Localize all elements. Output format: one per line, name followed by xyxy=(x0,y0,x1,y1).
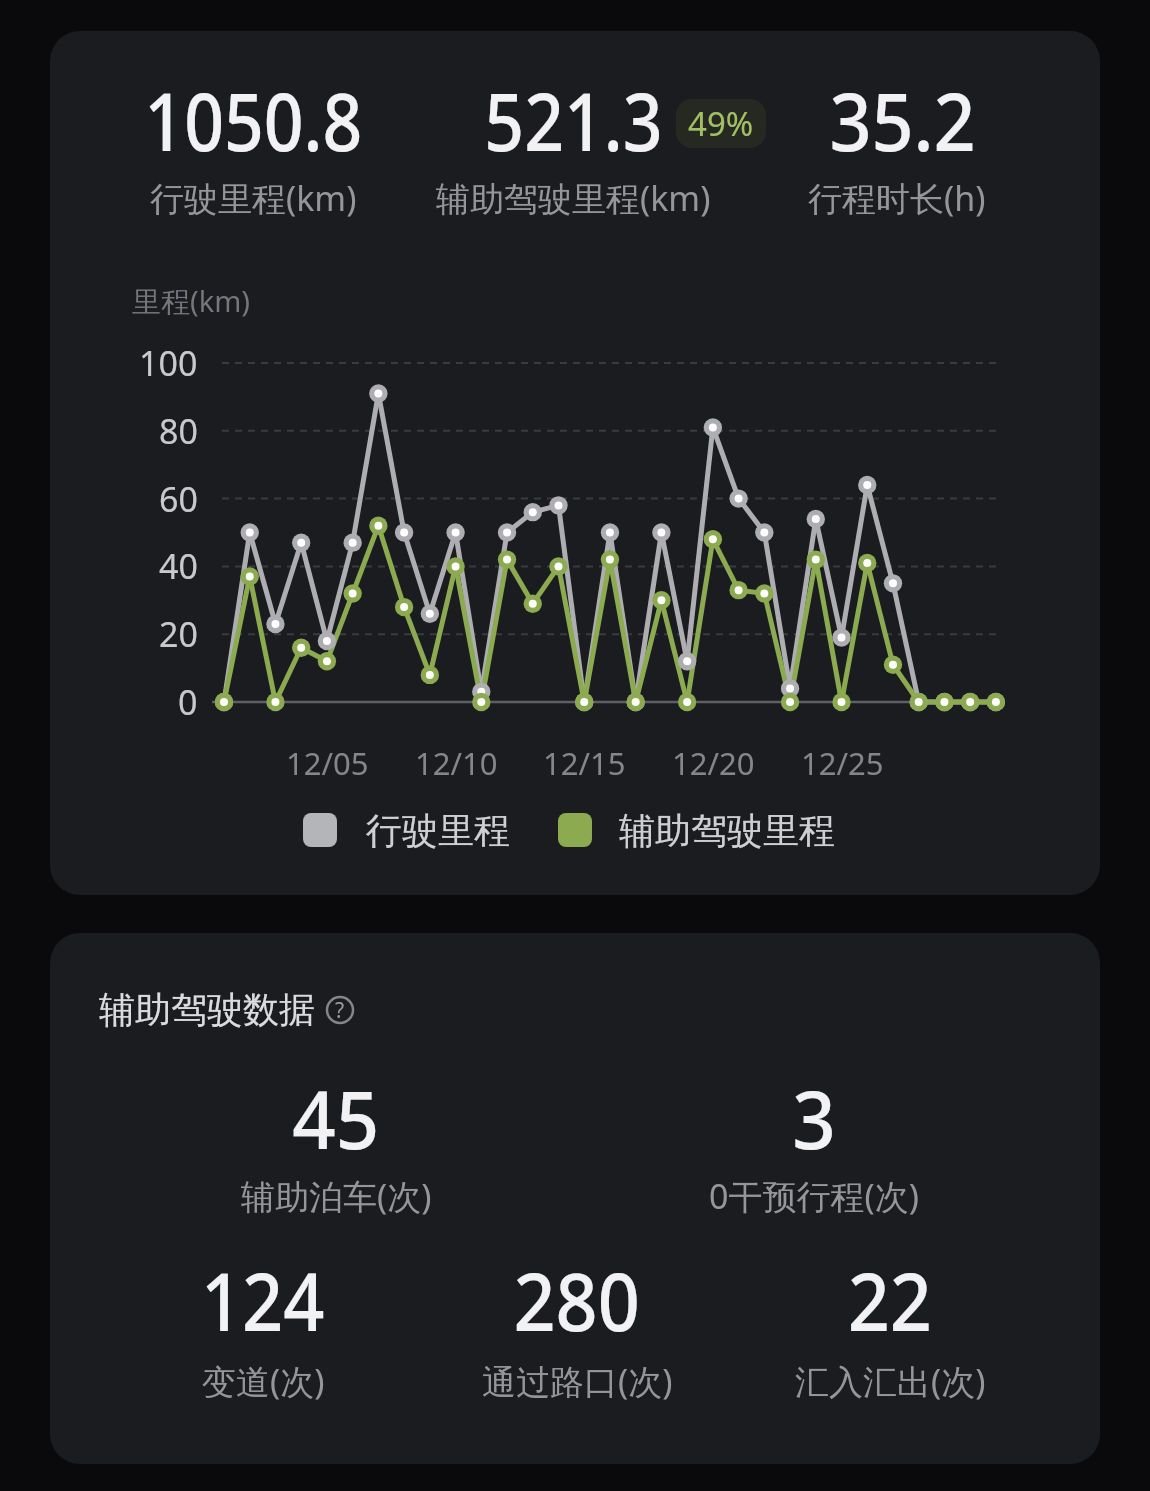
staticText: 35.2 xyxy=(829,65,977,174)
staticText: 280 xyxy=(513,1245,640,1354)
staticText: 3 xyxy=(792,1063,836,1172)
staticText: 124 xyxy=(201,1245,325,1354)
staticText: 20 xyxy=(159,611,198,657)
staticText: 辅助驾驶里程(km) xyxy=(436,175,711,221)
staticText: 辅助驾驶数据 xyxy=(99,987,315,1032)
staticText: 80 xyxy=(159,408,198,454)
staticText: 49% xyxy=(688,101,754,146)
staticText: 12/25 xyxy=(801,742,884,784)
staticText: 40 xyxy=(159,543,198,589)
staticText: 0干预行程(次) xyxy=(709,1173,919,1219)
staticText: 45 xyxy=(292,1063,380,1172)
button[interactable]: 49% xyxy=(676,99,766,148)
staticText: 12/15 xyxy=(543,742,626,784)
staticText: 辅助驾驶里程 xyxy=(619,808,835,853)
staticText: ? xyxy=(335,996,345,1025)
staticText: 60 xyxy=(159,476,198,522)
staticText: 12/05 xyxy=(286,742,369,784)
staticText: 12/10 xyxy=(415,742,498,784)
staticText: 0 xyxy=(178,679,198,725)
staticText: 辅助泊车(次) xyxy=(241,1173,432,1219)
staticText: 行驶里程 xyxy=(366,808,510,853)
staticText: 12/20 xyxy=(672,742,755,784)
staticText: 100 xyxy=(139,340,198,386)
staticText: 22 xyxy=(848,1245,932,1354)
staticText: 1050.8 xyxy=(144,65,363,174)
staticText: 里程(km) xyxy=(132,281,251,321)
staticText: 变道(次) xyxy=(202,1358,325,1404)
staticText: 521.3 xyxy=(484,65,663,174)
button[interactable]: ? xyxy=(318,988,362,1032)
staticText: 通过路口(次) xyxy=(482,1358,673,1404)
staticText: 行程时长(h) xyxy=(808,175,986,221)
staticText: 汇入汇出(次) xyxy=(795,1358,986,1404)
staticText: 行驶里程(km) xyxy=(150,175,357,221)
